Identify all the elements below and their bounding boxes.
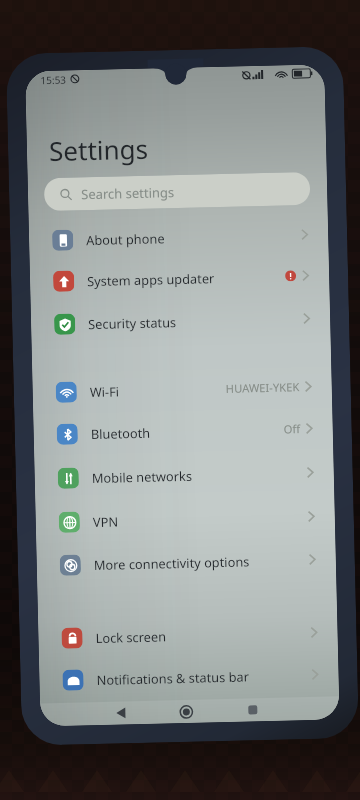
button[interactable]: VPN <box>35 494 335 544</box>
button[interactable]: Notifications & status bar <box>39 652 339 702</box>
button[interactable]: Wi-Fi <box>32 364 332 414</box>
staticText: Wi-Fi <box>90 382 120 400</box>
staticText: Notifications & status bar <box>96 667 250 688</box>
button[interactable]: Search settings <box>44 172 310 211</box>
staticText: 15:53 <box>40 73 67 87</box>
button[interactable]: Back <box>102 701 139 725</box>
staticText: About phone <box>86 229 165 248</box>
staticText: More connectivity options <box>94 552 250 573</box>
staticText: Security status <box>88 313 176 332</box>
staticText: Lock screen <box>95 627 167 646</box>
button[interactable]: Security status <box>31 296 331 346</box>
button[interactable]: About phone <box>29 212 329 262</box>
staticText: Mobile networks <box>92 467 193 486</box>
staticText: Settings <box>49 131 148 168</box>
button[interactable]: Mobile networks <box>34 450 334 500</box>
staticText: Bluetooth <box>91 424 151 442</box>
button[interactable]: System apps updater <box>30 253 330 303</box>
staticText: System apps updater <box>87 269 215 289</box>
button[interactable]: More connectivity options <box>36 537 336 587</box>
staticText: VPN <box>93 512 119 530</box>
staticText: HUAWEI-YKEK <box>226 379 300 396</box>
button[interactable]: Lock screen <box>38 610 338 660</box>
staticText: Off <box>283 421 301 437</box>
staticText: Search settings <box>81 183 175 203</box>
button[interactable]: Home <box>168 699 205 723</box>
button[interactable]: Bluetooth <box>33 406 333 456</box>
button[interactable]: Recents <box>234 698 271 722</box>
